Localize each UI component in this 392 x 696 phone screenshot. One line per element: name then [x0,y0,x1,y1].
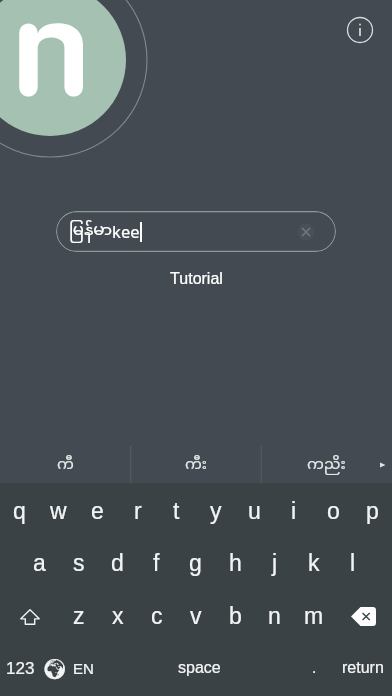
button[interactable]: မြန်မာkee [56,211,336,252]
button[interactable]: s [59,539,98,587]
staticText: l [350,550,356,576]
button[interactable]: w [39,487,78,535]
staticText: 123 [6,659,35,678]
button[interactable]: j [255,539,294,587]
staticText: d [111,550,124,576]
button[interactable]: Change language [39,645,71,691]
staticText: h [229,550,242,576]
button[interactable]: d [98,539,137,587]
staticText: f [153,550,160,576]
button[interactable]: v [176,592,215,640]
staticText: i [291,498,297,524]
button[interactable]: space [104,645,294,691]
staticText: k [308,550,320,576]
button[interactable]: ကညိး [261,446,392,483]
staticText: EN [73,660,94,677]
staticText: m [304,603,324,629]
button[interactable]: q [0,487,39,535]
button[interactable]: p [353,487,392,535]
staticText: s [73,550,85,576]
button[interactable]: e [78,487,117,535]
button[interactable]: a [20,539,59,587]
button[interactable]: Tutorial [0,266,392,292]
staticText: g [189,550,202,576]
staticText: a [33,550,46,576]
staticText: j [272,550,278,576]
button[interactable]: Shift [1,593,59,641]
staticText: ကညိး [307,455,346,475]
button[interactable]: x [98,592,137,640]
button[interactable]: EN [68,645,98,691]
staticText: Tutorial [170,270,223,288]
staticText: w [50,498,67,524]
button[interactable]: Backspace [337,592,389,640]
button[interactable]: return [333,645,392,691]
staticText: o [327,498,340,524]
staticText: r [134,498,142,524]
button[interactable]: y [196,487,235,535]
button[interactable]: Information [342,12,378,48]
button[interactable]: n [255,592,294,640]
staticText: ကီ [57,455,74,475]
button[interactable]: r [118,487,157,535]
button[interactable]: i [274,487,313,535]
button[interactable]: Clear text [296,222,316,242]
staticText: e [91,498,104,524]
button[interactable]: k [294,539,333,587]
staticText: p [366,498,379,524]
staticText: y [210,498,222,524]
button[interactable]: z [59,592,98,640]
button[interactable]: c [137,592,176,640]
button[interactable]: . [298,645,330,691]
button[interactable]: u [235,487,274,535]
staticText: 🌍 [42,657,68,680]
button[interactable]: ကီး [131,446,262,483]
staticText: . [312,659,317,677]
staticText: z [73,603,85,629]
button[interactable]: g [176,539,215,587]
staticText: space [178,659,221,677]
button[interactable]: b [216,592,255,640]
staticText: u [248,498,261,524]
staticText: v [190,603,202,629]
staticText: ကီး [185,455,208,475]
button[interactable]: 123 [0,645,40,691]
staticText: return [342,659,384,677]
staticText: မြန်မာkee [69,220,140,242]
button[interactable]: t [157,487,196,535]
staticText: c [151,603,163,629]
button[interactable]: o [314,487,353,535]
button[interactable]: f [137,539,176,587]
staticText: x [112,603,124,629]
staticText: t [173,498,180,524]
button[interactable]: m [294,592,333,640]
staticText: q [13,498,26,524]
staticText: b [229,603,242,629]
button[interactable]: h [216,539,255,587]
staticText: n [268,603,281,629]
button[interactable]: ကီ [0,446,131,483]
button[interactable]: More suggestions [372,446,392,483]
button[interactable]: l [333,539,372,587]
